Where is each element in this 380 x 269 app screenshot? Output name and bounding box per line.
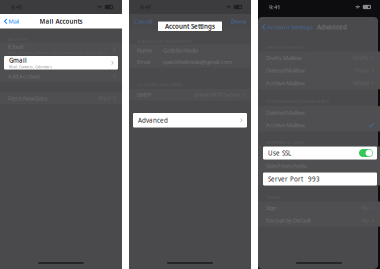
staticText: Advanced [138, 116, 168, 124]
button[interactable]: Mail [0, 14, 23, 28]
staticText: Godzilla Media [163, 47, 198, 54]
button[interactable]: Archive Mailbox [258, 77, 380, 89]
staticText: Fetch New Data [8, 95, 47, 102]
staticText: Name [137, 47, 152, 54]
button[interactable]: Archive Mailbox [258, 119, 380, 131]
staticText: Mail Accounts [39, 17, 82, 25]
staticText: No [362, 217, 369, 224]
staticText: Email [137, 58, 150, 65]
staticText: Account Settings [267, 23, 313, 31]
button[interactable]: Use SSL [263, 146, 377, 159]
staticText: Encrypt by Default [266, 217, 311, 224]
button[interactable]: Account Settings [258, 19, 313, 35]
staticText: Deleted Mailbox [266, 67, 305, 74]
staticText: SMTP [137, 91, 151, 98]
staticText: S/MIME [266, 194, 280, 200]
staticText: Mail, Contacts, Calendars [9, 64, 52, 69]
staticText: Sign [266, 204, 276, 211]
staticText: Cancel [134, 17, 152, 25]
button[interactable]: Deleted Mailbox [258, 64, 380, 77]
button[interactable]: Account Settings [158, 21, 222, 31]
staticText: Server Port [268, 175, 303, 183]
staticText: Archive Mailbox [266, 79, 305, 87]
staticText: MAILBOX BEHAVIORS [266, 44, 305, 50]
staticText: Trash [355, 67, 369, 74]
staticText: Drafts Mailbox [266, 54, 302, 61]
button[interactable]: Gmail [4, 56, 118, 69]
button[interactable]: Advanced [133, 113, 247, 127]
staticText: iCloud [8, 43, 23, 50]
staticText: Account Settings [165, 22, 215, 30]
staticText: Push [99, 95, 111, 102]
staticText: Add Account [8, 73, 40, 80]
staticText: 9:41 [11, 3, 22, 11]
staticText: speckfedmedia@gmail.com [163, 58, 232, 65]
staticText: INCOMING SETTINGS [266, 139, 304, 145]
button[interactable]: Drafts Mailbox [258, 51, 380, 64]
staticText: Gmail SMTP Server [194, 91, 240, 98]
button[interactable]: SMTP [129, 89, 251, 100]
button[interactable]: Deleted Mailbox [258, 106, 380, 119]
button[interactable]: Server Port [263, 172, 377, 185]
staticText: Done [231, 17, 246, 25]
staticText: No [362, 204, 369, 211]
staticText: IMAP ACCOUNT INFORMATION [137, 38, 192, 44]
button[interactable]: Name [129, 44, 251, 56]
button[interactable]: IMAP Path Prefix [258, 160, 380, 173]
staticText: Gmail [9, 56, 27, 64]
button[interactable]: Add Account [0, 70, 122, 82]
staticText: 9:41 [140, 3, 151, 11]
staticText: Archive Mailbox [266, 121, 305, 129]
staticText: Drafts [353, 54, 369, 61]
staticText: Deleted Mailbox [266, 109, 305, 116]
button[interactable]: Email [129, 56, 251, 67]
staticText: 993 [308, 175, 320, 183]
button[interactable]: Fetch New Data [0, 92, 122, 104]
staticText: Mail [9, 17, 19, 25]
button[interactable]: Done [226, 14, 251, 28]
staticText: IMAP Path Prefix [266, 163, 307, 170]
staticText: All Mail [353, 79, 369, 86]
staticText: Use SSL [268, 149, 291, 157]
button[interactable]: Encrypt by Default [258, 214, 380, 227]
staticText: 9:41 [269, 3, 280, 11]
staticText: Advanced [317, 23, 347, 31]
button[interactable]: Cancel [129, 14, 157, 28]
